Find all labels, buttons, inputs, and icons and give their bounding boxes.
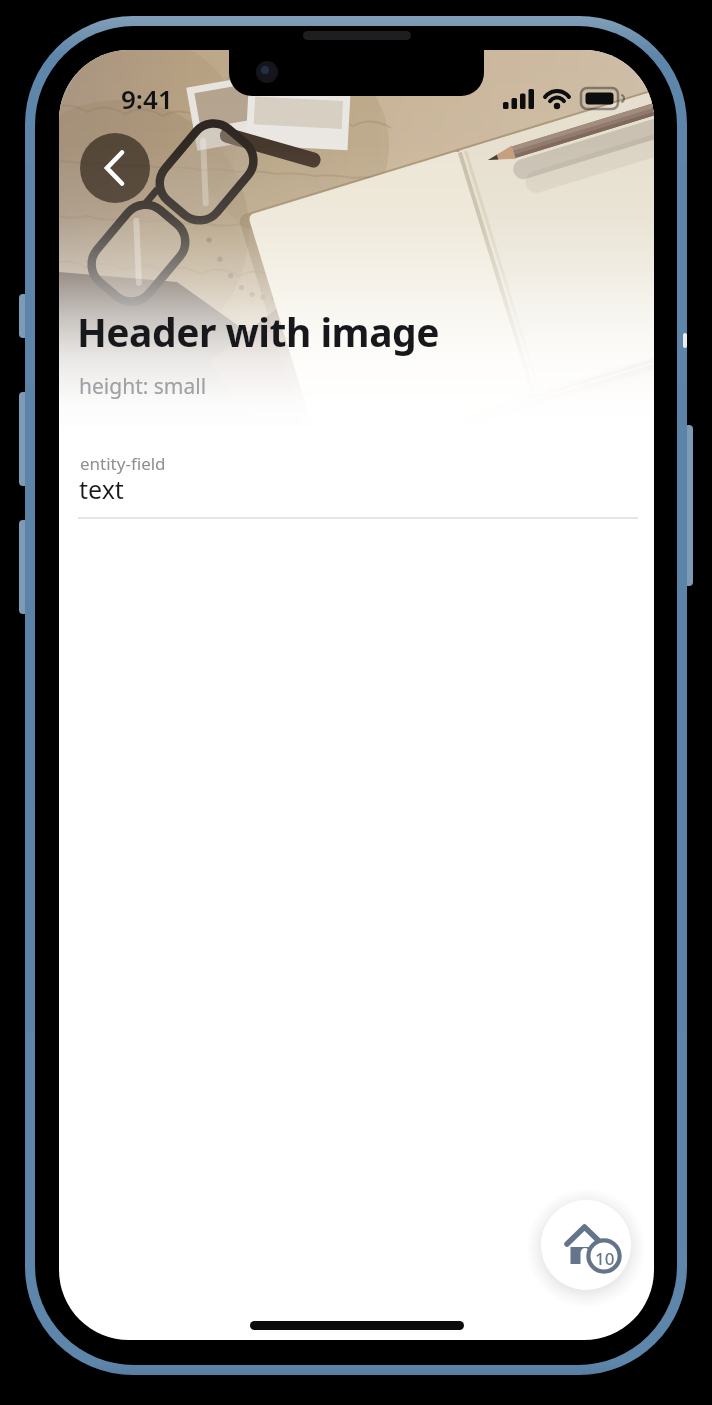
staticText: entity-field — [80, 452, 166, 475]
staticText: Header with image — [77, 305, 439, 358]
button[interactable]: 10 — [541, 1200, 631, 1290]
staticText: height: small — [79, 372, 207, 401]
staticText: 9:41 — [121, 81, 173, 116]
staticText: text — [79, 472, 124, 506]
button[interactable]: entity-field — [59, 448, 654, 518]
staticText: 10 — [595, 1247, 615, 1270]
button[interactable] — [80, 133, 150, 203]
